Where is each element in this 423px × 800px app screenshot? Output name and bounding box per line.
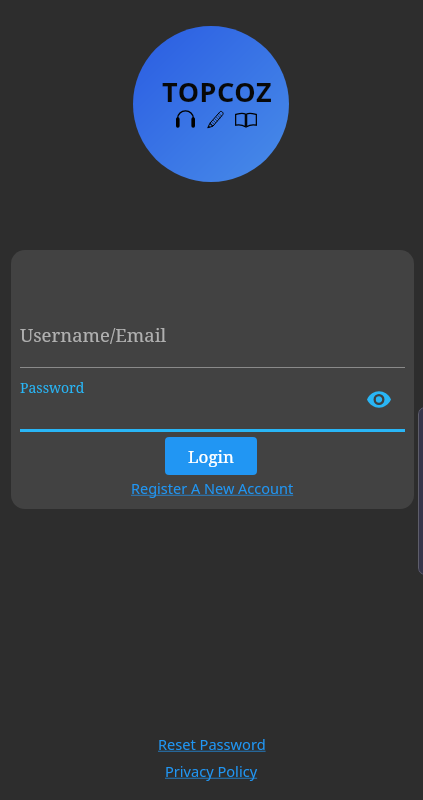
- button[interactable]: TOPCOZ logo: [133, 26, 289, 182]
- button[interactable]: Show password: [365, 385, 393, 413]
- staticText: Reset Password: [158, 734, 266, 754]
- staticText: Username/Email: [20, 322, 167, 347]
- button[interactable]: Password: [20, 374, 405, 432]
- staticText: Register A New Account: [131, 478, 294, 498]
- button[interactable]: Username/Email: [20, 312, 405, 368]
- button[interactable]: Privacy Policy: [165, 761, 258, 781]
- staticText: Password: [20, 378, 85, 397]
- button[interactable]: Register A New Account: [131, 478, 294, 498]
- staticText: TOPCOZ: [162, 73, 273, 110]
- button[interactable]: Login: [165, 437, 257, 475]
- staticText: Privacy Policy: [165, 761, 258, 781]
- staticText: Login: [188, 445, 234, 468]
- button[interactable]: Reset Password: [158, 734, 266, 754]
